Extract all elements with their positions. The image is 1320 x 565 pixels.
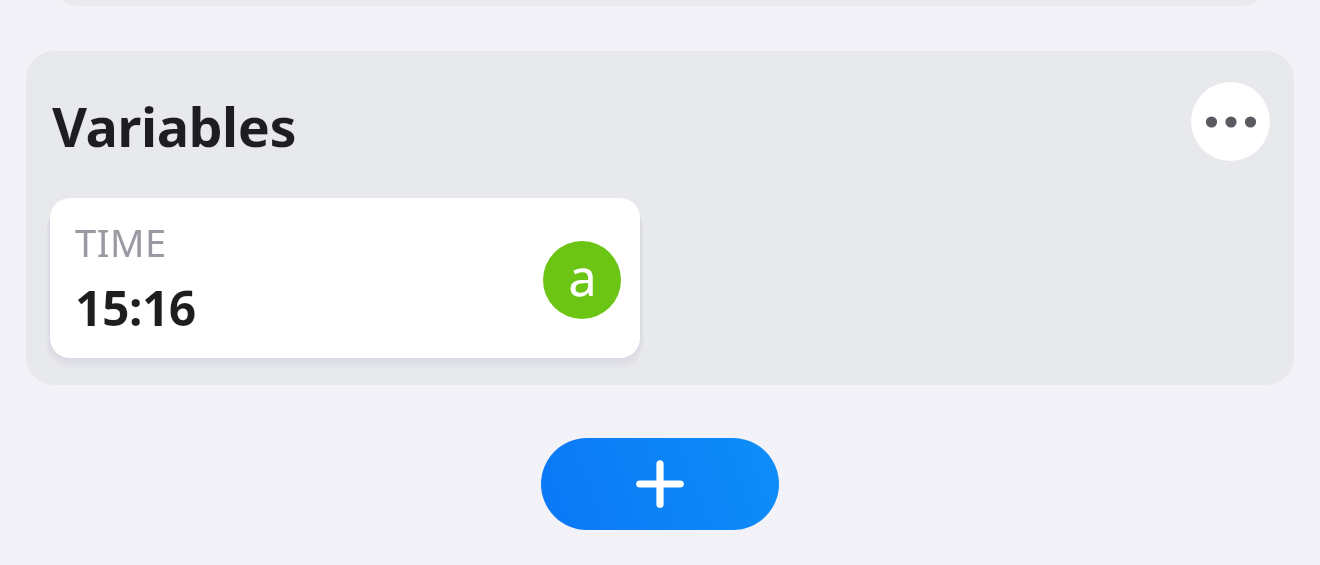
staticText: TIME bbox=[75, 216, 167, 268]
staticText: Variables bbox=[52, 89, 297, 163]
button[interactable]: TIME bbox=[50, 198, 640, 358]
button[interactable]: More options bbox=[1191, 82, 1270, 161]
staticText: a bbox=[568, 243, 597, 311]
staticText: 15:16 bbox=[75, 275, 196, 340]
button[interactable]: Add variable bbox=[541, 438, 779, 530]
